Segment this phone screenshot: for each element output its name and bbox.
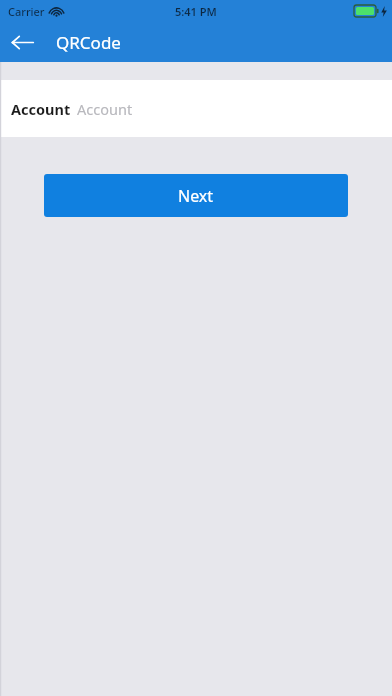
staticText: Account	[11, 99, 71, 119]
staticText: Carrier	[8, 4, 45, 19]
staticText: Account	[77, 99, 133, 119]
button[interactable]: Account	[0, 80, 392, 137]
button[interactable]: Back	[0, 22, 44, 62]
staticText: 5:41 PM	[175, 4, 217, 19]
staticText: Next	[178, 185, 214, 207]
staticText: QRCode	[56, 31, 121, 54]
button[interactable]: Next	[44, 174, 348, 217]
